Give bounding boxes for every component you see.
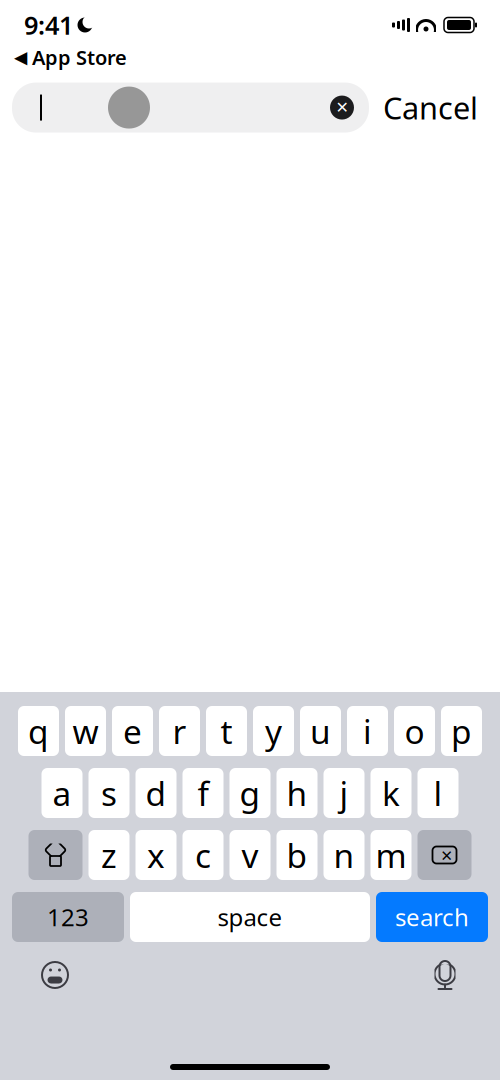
button[interactable]: u — [300, 706, 341, 756]
button[interactable]: v — [229, 830, 270, 880]
button[interactable]: ◀ — [14, 44, 127, 71]
button[interactable]: h — [276, 768, 317, 818]
staticText: y — [265, 709, 282, 753]
button[interactable]: i — [347, 706, 388, 756]
button[interactable]: l — [417, 768, 458, 818]
staticText: l — [433, 771, 442, 815]
button[interactable]: c — [182, 830, 223, 880]
button[interactable]: f — [182, 768, 223, 818]
staticText: k — [382, 771, 400, 815]
button[interactable]: search — [376, 892, 488, 942]
staticText: p — [451, 709, 472, 753]
staticText: ◀ — [14, 47, 27, 67]
staticText: space — [217, 901, 282, 933]
button[interactable]: y — [253, 706, 294, 756]
staticText: z — [101, 833, 117, 877]
button[interactable]: w — [65, 706, 106, 756]
button[interactable]: e — [112, 706, 153, 756]
button[interactable]: p — [441, 706, 482, 756]
button[interactable]: Cancel — [369, 83, 492, 133]
staticText: b — [286, 833, 307, 877]
staticText: r — [172, 709, 186, 753]
staticText: c — [195, 833, 211, 877]
staticText: o — [404, 709, 424, 753]
button[interactable]: m — [370, 830, 411, 880]
staticText: h — [286, 771, 307, 815]
staticText: x — [147, 833, 165, 877]
staticText: t — [220, 709, 232, 753]
button[interactable]: a — [41, 768, 82, 818]
button[interactable]: d — [135, 768, 176, 818]
staticText: v — [241, 833, 258, 877]
button[interactable]: space — [130, 892, 370, 942]
staticText: 123 — [47, 901, 89, 933]
staticText: g — [239, 771, 260, 815]
staticText: u — [310, 709, 331, 753]
button[interactable]: Shift — [28, 830, 82, 880]
button[interactable]: Dictation — [422, 952, 468, 998]
button[interactable]: k — [370, 768, 411, 818]
button[interactable]: o — [394, 706, 435, 756]
staticText: q — [28, 709, 49, 753]
button[interactable]: Clear text — [325, 88, 359, 128]
staticText: w — [72, 709, 98, 753]
button[interactable]: z — [88, 830, 129, 880]
button[interactable]: s — [88, 768, 129, 818]
button[interactable]: b — [276, 830, 317, 880]
staticText: e — [123, 709, 142, 753]
staticText: s — [101, 771, 117, 815]
button[interactable]: Emoji — [32, 952, 78, 998]
staticText: × — [441, 842, 452, 868]
button[interactable]: g — [229, 768, 270, 818]
button[interactable]: n — [323, 830, 364, 880]
staticText: search — [395, 901, 469, 933]
staticText: a — [52, 771, 71, 815]
button[interactable]: r — [159, 706, 200, 756]
staticText: Cancel — [383, 87, 478, 128]
staticText: m — [375, 833, 406, 877]
button[interactable]: x — [135, 830, 176, 880]
staticText: ✕ — [335, 98, 348, 117]
button[interactable]: t — [206, 706, 247, 756]
staticText: i — [363, 709, 372, 753]
button[interactable]: 123 — [12, 892, 124, 942]
button[interactable]: Delete — [417, 830, 471, 880]
staticText: j — [339, 771, 348, 815]
staticText: n — [333, 833, 354, 877]
staticText: f — [197, 771, 208, 815]
staticText: App Store — [32, 44, 127, 71]
staticText: 9:41 — [24, 8, 73, 42]
staticText: d — [145, 771, 166, 815]
button[interactable]: j — [323, 768, 364, 818]
button[interactable]: q — [18, 706, 59, 756]
